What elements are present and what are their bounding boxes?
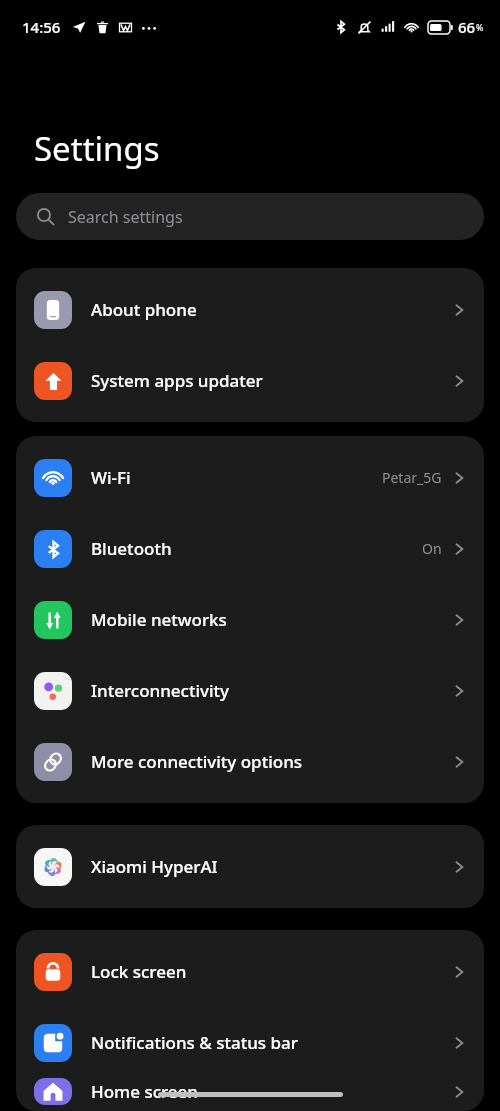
button[interactable]: Home screen [16, 1078, 484, 1105]
other: Home screen [34, 1078, 72, 1105]
staticText: On [422, 539, 442, 558]
button[interactable]: System apps updater [16, 345, 484, 416]
other: Notifications and status bar [34, 1024, 72, 1062]
button[interactable]: Interconnectivity [16, 655, 484, 726]
staticText: About phone [91, 298, 197, 321]
button[interactable]: Bluetooth [16, 513, 484, 584]
staticText: Mobile networks [91, 608, 227, 631]
button[interactable]: Mobile networks [16, 584, 484, 655]
other: System apps updater [34, 362, 72, 400]
other: Wi-Fi [34, 459, 72, 497]
staticText: Wi-Fi [91, 466, 131, 489]
staticText: More connectivity options [91, 750, 303, 773]
staticText: Xiaomi HyperAI [91, 855, 218, 878]
button[interactable]: Lock screen [16, 936, 484, 1007]
button[interactable]: Search settings [16, 193, 484, 240]
other: About phone [34, 291, 72, 329]
other: Bluetooth [34, 530, 72, 568]
other: More connectivity options [34, 743, 72, 781]
staticText: 66 [458, 17, 476, 37]
other: Mobile networks [34, 601, 72, 639]
button[interactable]: Wi-Fi [16, 442, 484, 513]
staticText: System apps updater [91, 369, 263, 392]
staticText: Notifications & status bar [91, 1031, 298, 1054]
staticText: Lock screen [91, 960, 187, 983]
staticText: Bluetooth [91, 537, 172, 560]
other: Lock screen [34, 953, 72, 991]
staticText: Petar_5G [382, 468, 442, 487]
staticText: Home screen [91, 1080, 199, 1103]
other: Xiaomi HyperAI [34, 848, 72, 886]
staticText: 14:56 [22, 17, 61, 37]
staticText: % [476, 21, 484, 33]
button[interactable]: Xiaomi HyperAI [16, 831, 484, 902]
other: Interconnectivity [34, 672, 72, 710]
staticText: Search settings [68, 206, 183, 228]
button[interactable]: About phone [16, 274, 484, 345]
staticText: Interconnectivity [91, 679, 230, 702]
button[interactable]: More connectivity options [16, 726, 484, 797]
staticText: Settings [34, 126, 160, 171]
button[interactable]: Notifications and status bar [16, 1007, 484, 1078]
